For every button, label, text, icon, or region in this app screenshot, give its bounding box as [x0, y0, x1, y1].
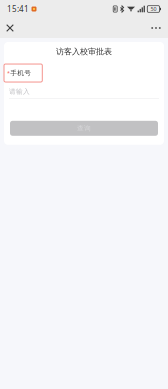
- staticText: 50: [150, 5, 156, 13]
- button[interactable]: More options: [146, 18, 166, 38]
- staticText: 手机号: [10, 69, 31, 77]
- staticText: 访客入校审批表: [56, 47, 112, 56]
- button[interactable]: Close: [1, 18, 19, 38]
- staticText: 请输入: [9, 87, 30, 96]
- staticText: 15:41: [7, 4, 29, 14]
- button[interactable]: 查询: [10, 121, 158, 136]
- staticText: 查询: [77, 124, 91, 132]
- staticText: *: [7, 69, 10, 77]
